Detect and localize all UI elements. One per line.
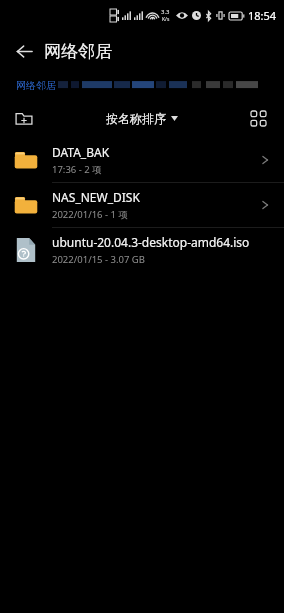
staticText: 17:36 - 2 项 — [52, 163, 102, 176]
button[interactable]: New folder — [8, 102, 40, 134]
button[interactable]: Grid view — [242, 102, 274, 134]
staticText: 网络邻居 — [16, 79, 56, 92]
staticText: K/s — [162, 16, 170, 23]
staticText: 2022/01/16 - 1 项 — [52, 208, 128, 221]
staticText: 3.3 — [161, 8, 170, 16]
staticText: 按名称排序 — [106, 111, 166, 126]
button[interactable]: NAS_NEW_DISK — [0, 183, 284, 227]
staticText: ubuntu-20.04.3-desktop-amd64.iso — [52, 234, 250, 250]
button[interactable]: ubuntu-20.04.3-desktop-amd64.iso — [0, 228, 284, 272]
staticText: 网络邻居 — [44, 41, 112, 62]
button[interactable]: 网络邻居 — [0, 72, 284, 98]
staticText: 2022/01/15 - 3.07 GB — [52, 253, 145, 266]
staticText: 18:54 — [248, 8, 277, 23]
button[interactable]: 按名称排序 — [100, 107, 184, 130]
button[interactable]: DATA_BAK — [0, 138, 284, 182]
staticText: DATA_BAK — [52, 144, 110, 160]
staticText: NAS_NEW_DISK — [52, 189, 140, 205]
button[interactable]: Back — [8, 35, 40, 67]
